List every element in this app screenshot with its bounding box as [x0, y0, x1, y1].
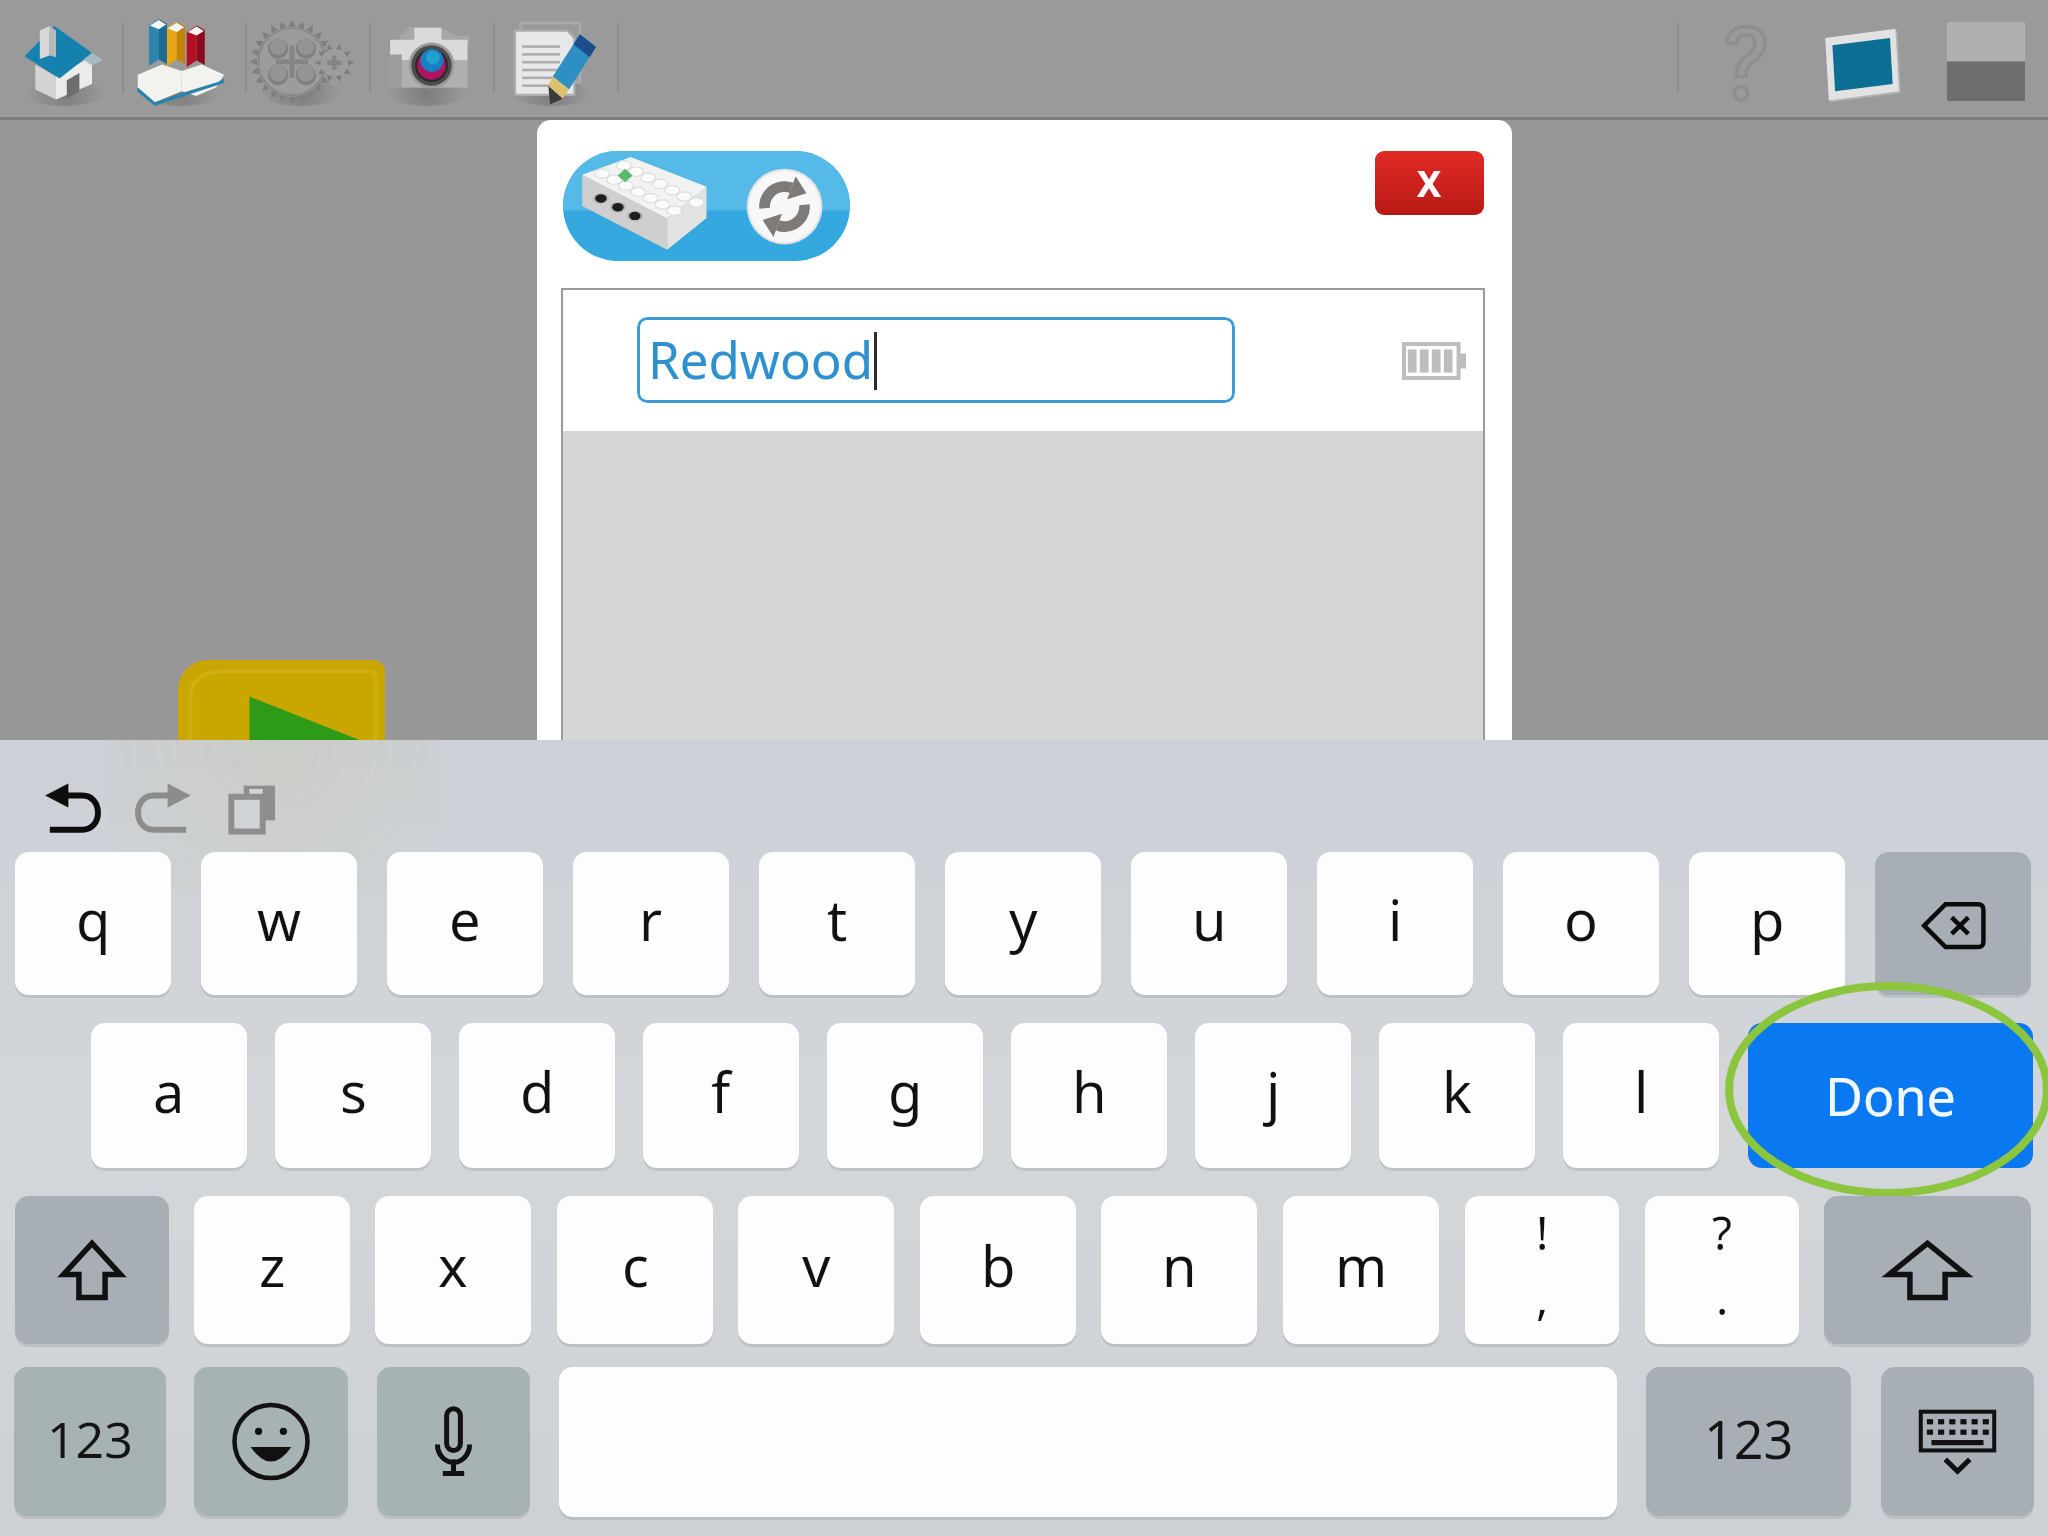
staticText: m	[1335, 1227, 1388, 1303]
staticText: X	[1417, 159, 1442, 208]
button[interactable]: i	[1317, 852, 1473, 995]
button[interactable]: p	[1689, 852, 1845, 995]
staticText: q	[76, 881, 111, 957]
button[interactable]: Library	[135, 14, 225, 106]
button[interactable]: Close	[1375, 151, 1484, 215]
button[interactable]: m	[1283, 1196, 1439, 1344]
button[interactable]: Help	[1700, 14, 1790, 106]
button[interactable]: k	[1379, 1023, 1535, 1168]
button[interactable]: Emoji	[194, 1367, 348, 1516]
button[interactable]: Backspace	[1875, 852, 2031, 995]
staticText: k	[1442, 1053, 1472, 1129]
staticText: ?	[1712, 1201, 1732, 1264]
button[interactable]: Camera	[382, 14, 472, 106]
staticText: h	[1072, 1053, 1107, 1129]
staticText: s	[340, 1053, 367, 1129]
staticText: i	[1388, 881, 1403, 957]
button[interactable]: d	[459, 1023, 615, 1168]
staticText: u	[1192, 881, 1227, 957]
button[interactable]: l	[1563, 1023, 1719, 1168]
button[interactable]: h	[1011, 1023, 1167, 1168]
staticText: r	[639, 881, 663, 957]
staticText: y	[1009, 881, 1038, 957]
button[interactable]: Document	[506, 14, 596, 106]
button[interactable]: Dictate	[377, 1367, 530, 1516]
button[interactable]: ?	[1645, 1196, 1799, 1344]
button[interactable]: Gears	[256, 14, 346, 106]
button[interactable]: Undo	[44, 782, 102, 834]
button[interactable]: b	[920, 1196, 1076, 1344]
staticText: Redwood	[648, 324, 874, 393]
staticText: z	[259, 1227, 286, 1303]
staticText: g	[888, 1053, 923, 1129]
button[interactable]: Palette	[1947, 22, 2025, 101]
button[interactable]: t	[759, 852, 915, 995]
button[interactable]: Shift	[15, 1196, 169, 1344]
button[interactable]: Redo	[134, 782, 192, 834]
staticText: e	[449, 881, 481, 957]
staticText: p	[1750, 881, 1785, 957]
staticText: n	[1162, 1227, 1197, 1303]
button[interactable]: e	[387, 852, 543, 995]
staticText: j	[1266, 1053, 1281, 1129]
staticText: f	[711, 1053, 731, 1129]
button[interactable]: g	[827, 1023, 983, 1168]
button[interactable]: q	[15, 852, 171, 995]
button[interactable]: y	[945, 852, 1101, 995]
button[interactable]: f	[643, 1023, 799, 1168]
button[interactable]: c	[557, 1196, 713, 1344]
button[interactable]: r	[573, 852, 729, 995]
staticText: ,	[1536, 1266, 1549, 1329]
button[interactable]: s	[275, 1023, 431, 1168]
button[interactable]: o	[1503, 852, 1659, 995]
staticText: d	[520, 1053, 555, 1129]
button[interactable]: n	[1101, 1196, 1257, 1344]
button[interactable]: Copy	[228, 780, 284, 836]
staticText: .	[1716, 1266, 1729, 1329]
button[interactable]: w	[201, 852, 357, 995]
staticText: Done	[1825, 1060, 1956, 1131]
button[interactable]: Hide keyboard	[1881, 1367, 2034, 1516]
button[interactable]: a	[91, 1023, 247, 1168]
button[interactable]: Numbers	[14, 1367, 166, 1516]
staticText: x	[438, 1227, 468, 1303]
staticText: 123	[47, 1405, 133, 1473]
button[interactable]: v	[738, 1196, 894, 1344]
button[interactable]: Play	[178, 660, 385, 764]
button[interactable]: Tablet	[1818, 14, 1908, 106]
button[interactable]: Shift	[1824, 1196, 2031, 1344]
button[interactable]: z	[194, 1196, 350, 1344]
staticText: c	[622, 1227, 649, 1303]
staticText: v	[802, 1227, 831, 1303]
staticText: w	[257, 881, 302, 957]
button[interactable]: u	[1131, 852, 1287, 995]
staticText: 123	[1704, 1403, 1794, 1474]
staticText: a	[153, 1053, 185, 1129]
button[interactable]: Hub	[563, 151, 850, 261]
button[interactable]: Home	[20, 14, 110, 106]
staticText: l	[1634, 1053, 1649, 1129]
staticText: t	[827, 881, 848, 957]
button[interactable]: Redwood	[637, 317, 1235, 403]
button[interactable]: Numbers	[1646, 1367, 1851, 1516]
button[interactable]: j	[1195, 1023, 1351, 1168]
staticText: !	[1536, 1201, 1549, 1264]
staticText: o	[1564, 881, 1598, 957]
button[interactable]: !	[1465, 1196, 1619, 1344]
button[interactable]: x	[375, 1196, 531, 1344]
button[interactable]: Done	[1748, 1023, 2033, 1168]
staticText: b	[981, 1227, 1016, 1303]
